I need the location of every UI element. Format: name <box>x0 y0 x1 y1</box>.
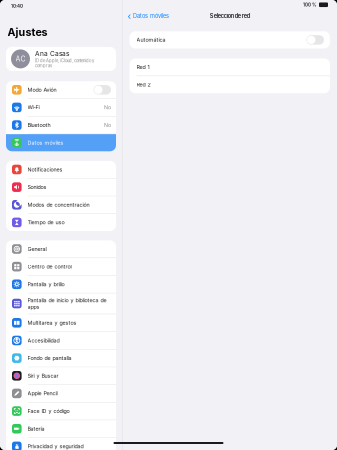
button[interactable]: Datos móviles <box>6 134 116 151</box>
staticText: Centro de control <box>28 263 72 270</box>
button[interactable]: Accesibilidad <box>6 332 116 349</box>
staticText: Face ID y código <box>28 408 70 414</box>
staticText: Red 2 <box>136 81 150 88</box>
staticText: Sonidos <box>28 184 47 190</box>
staticText: Pantalla de inicio y biblioteca de apps <box>28 297 107 310</box>
button[interactable]: Modos de concentración <box>6 196 116 213</box>
button[interactable]: Privacidad y seguridad <box>6 438 116 450</box>
staticText: Pantalla y brillo <box>28 281 65 288</box>
button[interactable]: Fondo de pantalla <box>6 350 116 367</box>
button[interactable]: Centro de control <box>6 258 116 275</box>
button[interactable]: Wi-Fi <box>6 99 116 116</box>
button[interactable]: Modo Avión <box>6 81 116 98</box>
staticText: Modos de concentración <box>28 202 90 208</box>
staticText: Batería <box>28 425 45 432</box>
staticText: Tiempo de uso <box>28 219 65 226</box>
staticText: Datos móviles <box>28 139 64 146</box>
button[interactable]: Pantalla de inicio y biblioteca de apps <box>6 293 116 314</box>
staticText: Selección de red <box>210 13 250 19</box>
staticText: AC <box>15 55 25 63</box>
button[interactable]: Automática <box>129 31 330 48</box>
staticText: Notificaciones <box>28 166 63 173</box>
staticText: ‹ <box>127 10 131 22</box>
staticText: 100 % <box>303 2 317 7</box>
staticText: Fondo de pantalla <box>28 355 72 361</box>
button[interactable]: Apple Pencil <box>6 385 116 402</box>
button[interactable]: Pantalla y brillo <box>6 276 116 293</box>
button[interactable]: Siri y Buscar <box>6 367 116 384</box>
button[interactable]: Red 1 <box>129 58 330 76</box>
button[interactable]: ‹ <box>122 9 174 22</box>
staticText: ID de Apple, iCloud, contenido y compras <box>35 58 94 68</box>
staticText: Ana Casas <box>35 50 69 57</box>
staticText: Red 1 <box>136 64 149 70</box>
button[interactable]: General <box>6 240 116 257</box>
staticText: Ajustes <box>7 26 47 38</box>
button[interactable]: Face ID y código <box>6 402 116 420</box>
staticText: Modo Avión <box>28 87 57 93</box>
staticText: General <box>28 246 47 252</box>
button[interactable]: Red 2 <box>129 76 330 93</box>
button[interactable]: Multitarea y gestos <box>6 314 116 331</box>
staticText: Bluetooth <box>28 122 51 128</box>
button[interactable]: Batería <box>6 420 116 437</box>
staticText: Accesibilidad <box>28 337 60 344</box>
staticText: Privacidad y seguridad <box>28 443 84 450</box>
staticText: No <box>104 104 111 111</box>
button[interactable]: Notificaciones <box>6 161 116 178</box>
button[interactable]: AC <box>6 47 116 71</box>
staticText: Datos móviles <box>133 13 169 19</box>
staticText: Multitarea y gestos <box>28 320 77 326</box>
button[interactable]: Bluetooth <box>6 116 116 134</box>
button[interactable]: Tiempo de uso <box>6 214 116 231</box>
staticText: Apple Pencil <box>28 390 58 397</box>
staticText: Automática <box>136 37 165 43</box>
staticText: Wi-Fi <box>28 104 40 111</box>
staticText: Siri y Buscar <box>28 373 59 379</box>
staticText: 10:40 <box>11 3 23 9</box>
button[interactable]: Sonidos <box>6 179 116 196</box>
staticText: No <box>104 122 111 128</box>
